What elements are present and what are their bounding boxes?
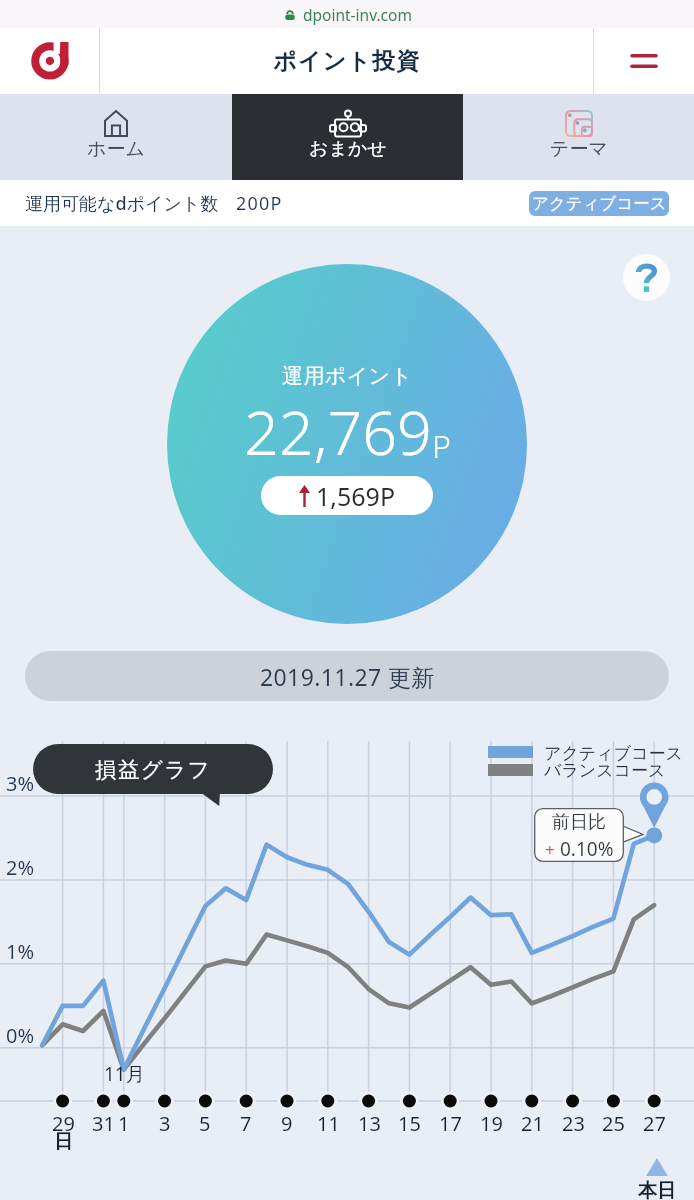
staticText: 本日: [638, 1179, 676, 1200]
button[interactable]: 2019.11.27 更新: [25, 651, 669, 701]
staticText: 9: [281, 1110, 293, 1136]
button[interactable]: Help: [623, 254, 670, 301]
staticText: 運用ポイント: [282, 363, 413, 389]
button[interactable]: テーマ: [463, 94, 694, 180]
staticText: アクティブコース: [532, 193, 667, 214]
button[interactable]: アクティブコース: [529, 191, 669, 216]
staticText: 2019.11.27 更新: [260, 661, 435, 692]
staticText: 15: [398, 1110, 421, 1136]
button[interactable]: おまかせ: [232, 94, 463, 180]
staticText: アクティブコース: [544, 743, 683, 764]
staticText: 27: [643, 1110, 666, 1136]
staticText: 0.10%: [560, 836, 614, 862]
staticText: 11月: [104, 1061, 145, 1087]
staticText: 前日比: [552, 811, 606, 834]
staticText: P: [432, 424, 451, 468]
staticText: 1: [118, 1110, 130, 1136]
staticText: 運用可能なdポイント数: [25, 191, 219, 216]
staticText: 200P: [236, 191, 283, 216]
staticText: 17: [439, 1110, 462, 1136]
staticText: 13: [358, 1110, 381, 1136]
staticText: 1,569P: [316, 479, 396, 513]
button[interactable]: Menu: [594, 28, 694, 94]
staticText: バランスコース: [544, 760, 666, 781]
staticText: 7: [240, 1110, 252, 1136]
staticText: 日: [54, 1130, 73, 1154]
staticText: dpoint-inv.com: [303, 4, 412, 25]
staticText: +: [545, 838, 555, 861]
staticText: 25: [602, 1110, 625, 1136]
staticText: ポイント投資: [273, 47, 421, 76]
button[interactable]: 1,569P: [261, 476, 433, 515]
staticText: ホーム: [87, 137, 145, 161]
staticText: 23: [562, 1110, 585, 1136]
staticText: 1%: [6, 938, 35, 964]
staticText: おまかせ: [309, 137, 387, 161]
staticText: 19: [480, 1110, 503, 1136]
staticText: 22,769: [244, 390, 432, 473]
staticText: 3%: [6, 770, 35, 796]
staticText: 2%: [6, 854, 35, 880]
staticText: 21: [521, 1110, 544, 1136]
button[interactable]: 損益グラフ: [33, 744, 273, 794]
staticText: 5: [199, 1110, 211, 1136]
staticText: テーマ: [550, 137, 608, 161]
button[interactable]: d logo home: [0, 28, 99, 94]
staticText: 3: [159, 1110, 171, 1136]
staticText: 11: [317, 1110, 340, 1136]
staticText: 29: [52, 1110, 75, 1136]
staticText: 損益グラフ: [95, 756, 212, 783]
staticText: 31: [92, 1110, 115, 1136]
button[interactable]: ホーム: [0, 94, 232, 180]
staticText: 0%: [6, 1022, 35, 1048]
